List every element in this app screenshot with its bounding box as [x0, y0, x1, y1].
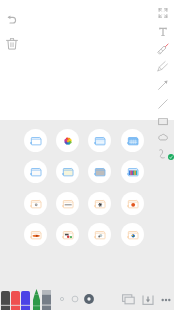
button[interactable]: Share target 5	[24, 160, 47, 183]
button[interactable]: Share target 9	[24, 192, 47, 215]
button[interactable]: Delete	[4, 36, 20, 52]
button[interactable]: Stroke size 2	[68, 292, 82, 306]
button[interactable]: Text	[155, 24, 171, 40]
button[interactable]: Share target 14	[56, 223, 79, 246]
button[interactable]: Share target 13	[24, 223, 47, 246]
button[interactable]: Black pen	[1, 291, 10, 310]
button[interactable]: Share target 6	[56, 160, 79, 183]
button[interactable]: Share target 16	[121, 223, 144, 246]
button[interactable]: Share target 8	[121, 160, 144, 183]
button[interactable]: Cloud shape	[155, 129, 171, 145]
button[interactable]: Share target 1	[24, 129, 47, 152]
button[interactable]: Share target 15	[88, 223, 111, 246]
button[interactable]: Lasso	[155, 146, 171, 162]
button[interactable]: Share target 11	[88, 192, 111, 215]
button[interactable]: Highlighter	[155, 58, 171, 74]
button[interactable]: Rectangle	[155, 113, 171, 129]
button[interactable]: Pen	[155, 41, 171, 57]
button[interactable]: Red pen	[11, 291, 20, 310]
button[interactable]: Green pen	[33, 289, 40, 310]
button[interactable]: Stroke size 1	[55, 292, 69, 306]
button[interactable]: Layers	[120, 292, 136, 308]
button[interactable]: Share target 2	[56, 129, 79, 152]
button[interactable]: Done	[168, 154, 174, 160]
button[interactable]: Share target 3	[88, 129, 111, 152]
button[interactable]: Undo	[4, 12, 20, 28]
button[interactable]: Blue pen	[21, 291, 30, 310]
button[interactable]: Share target 4	[121, 129, 144, 152]
button[interactable]: Expand	[155, 5, 171, 21]
button[interactable]: Arrow	[155, 77, 171, 93]
button[interactable]: Share target 10	[56, 192, 79, 215]
button[interactable]: Line	[155, 96, 171, 112]
button[interactable]: Grey marker	[42, 290, 51, 310]
button[interactable]: Stroke size 3	[82, 292, 96, 306]
button[interactable]: More options	[158, 292, 174, 308]
button[interactable]: Share target 7	[88, 160, 111, 183]
button[interactable]: Share target 12	[121, 192, 144, 215]
button[interactable]: Save	[140, 292, 156, 308]
